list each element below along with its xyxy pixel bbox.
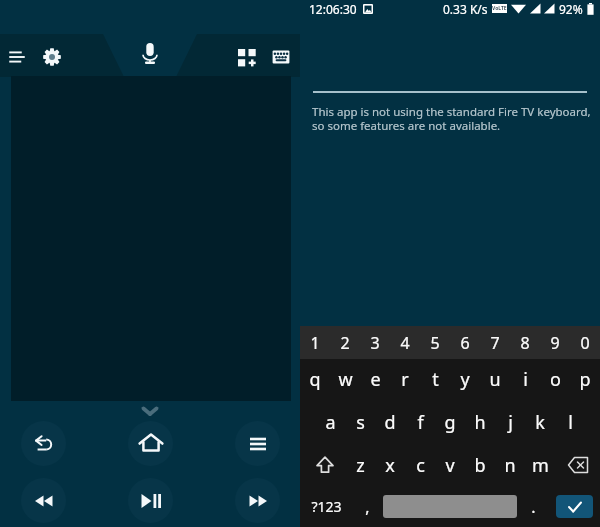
button[interactable]: e [360, 359, 390, 400]
button[interactable]: i [510, 359, 540, 400]
staticText: 3 [370, 332, 380, 354]
staticText: 9 [550, 332, 560, 354]
staticText: 6 [460, 332, 470, 354]
button[interactable]: u [480, 359, 510, 400]
button[interactable]: 3 [360, 326, 390, 359]
button[interactable]: 0 [570, 326, 600, 359]
button[interactable]: 8 [510, 326, 540, 359]
staticText: y [460, 367, 470, 392]
button[interactable]: 6 [450, 326, 480, 359]
button[interactable]: Rewind [21, 478, 66, 523]
staticText: t [432, 367, 439, 392]
button[interactable]: 2 [330, 326, 360, 359]
staticText: d [384, 410, 396, 435]
staticText: 0 [580, 332, 590, 354]
button[interactable]: v [435, 444, 465, 486]
staticText: l [568, 410, 573, 435]
staticText: 8 [520, 332, 530, 354]
staticText: z [356, 453, 365, 478]
staticText: 4 [400, 332, 410, 354]
staticText: e [370, 367, 381, 392]
staticText: o [550, 367, 561, 392]
staticText: VoLTE [492, 5, 507, 12]
button[interactable]: l [555, 400, 585, 444]
staticText: v [445, 453, 455, 478]
staticText: n [504, 453, 516, 478]
button[interactable]: j [495, 400, 525, 444]
button[interactable]: , [352, 486, 382, 527]
button[interactable]: Apps [225, 35, 269, 79]
button[interactable]: Menu [0, 35, 39, 79]
staticText: i [523, 367, 528, 392]
staticText: 0.33 K/s [443, 1, 488, 17]
staticText: j [508, 410, 513, 435]
button[interactable]: Space [382, 486, 518, 527]
staticText: , [365, 496, 370, 518]
button[interactable]: r [390, 359, 420, 400]
staticText: This app is not using the standard Fire … [312, 104, 592, 134]
staticText: s [356, 410, 365, 435]
button[interactable]: Keyboard [259, 35, 303, 79]
button[interactable]: Enter [556, 495, 593, 518]
button[interactable]: a [315, 400, 345, 444]
button[interactable]: m [525, 444, 555, 486]
button[interactable]: Shift [300, 444, 345, 486]
button[interactable]: d [375, 400, 405, 444]
staticText: b [474, 453, 486, 478]
button[interactable]: h [465, 400, 495, 444]
button[interactable]: t [420, 359, 450, 400]
staticText: 5 [430, 332, 440, 354]
staticText: f [417, 410, 424, 435]
staticText: u [489, 367, 501, 392]
button[interactable]: 5 [420, 326, 450, 359]
button[interactable]: Voice search [128, 35, 172, 79]
staticText: h [474, 410, 486, 435]
staticText: p [579, 367, 591, 392]
staticText: ?123 [311, 497, 342, 516]
button[interactable]: w [330, 359, 360, 400]
button[interactable]: 7 [480, 326, 510, 359]
button[interactable]: g [435, 400, 465, 444]
button[interactable]: Fast forward [235, 478, 280, 523]
staticText: g [444, 410, 456, 435]
button[interactable]: k [525, 400, 555, 444]
button[interactable]: y [450, 359, 480, 400]
button[interactable]: . [518, 486, 548, 527]
staticText: 2 [340, 332, 350, 354]
staticText: 92% [559, 1, 583, 17]
button[interactable]: o [540, 359, 570, 400]
staticText: . [531, 496, 536, 518]
button[interactable]: q [300, 359, 330, 400]
button[interactable]: Settings [30, 35, 74, 79]
button[interactable]: Collapse [139, 400, 161, 422]
button[interactable]: Backspace [555, 444, 600, 486]
button[interactable]: p [570, 359, 600, 400]
button[interactable]: f [405, 400, 435, 444]
staticText: w [338, 367, 353, 392]
staticText: 7 [490, 332, 500, 354]
button[interactable]: Play pause [128, 478, 173, 523]
staticText: 12:06:30 [309, 1, 357, 17]
button[interactable]: 4 [390, 326, 420, 359]
button[interactable]: Back [21, 421, 66, 466]
button[interactable]: 1 [300, 326, 330, 359]
staticText: a [325, 410, 336, 435]
staticText: r [401, 367, 409, 392]
button[interactable]: s [345, 400, 375, 444]
button[interactable]: Home [128, 421, 173, 466]
staticText: 1 [310, 332, 320, 354]
button[interactable]: ?123 [300, 486, 352, 527]
button[interactable]: 9 [540, 326, 570, 359]
staticText: m [532, 453, 549, 478]
staticText: c [416, 453, 425, 478]
staticText: k [535, 410, 545, 435]
staticText: q [309, 367, 321, 392]
button[interactable]: z [345, 444, 375, 486]
button[interactable]: Menu [235, 421, 280, 466]
button[interactable]: c [405, 444, 435, 486]
button[interactable]: b [465, 444, 495, 486]
button[interactable]: x [375, 444, 405, 486]
staticText: x [385, 453, 395, 478]
button[interactable]: n [495, 444, 525, 486]
